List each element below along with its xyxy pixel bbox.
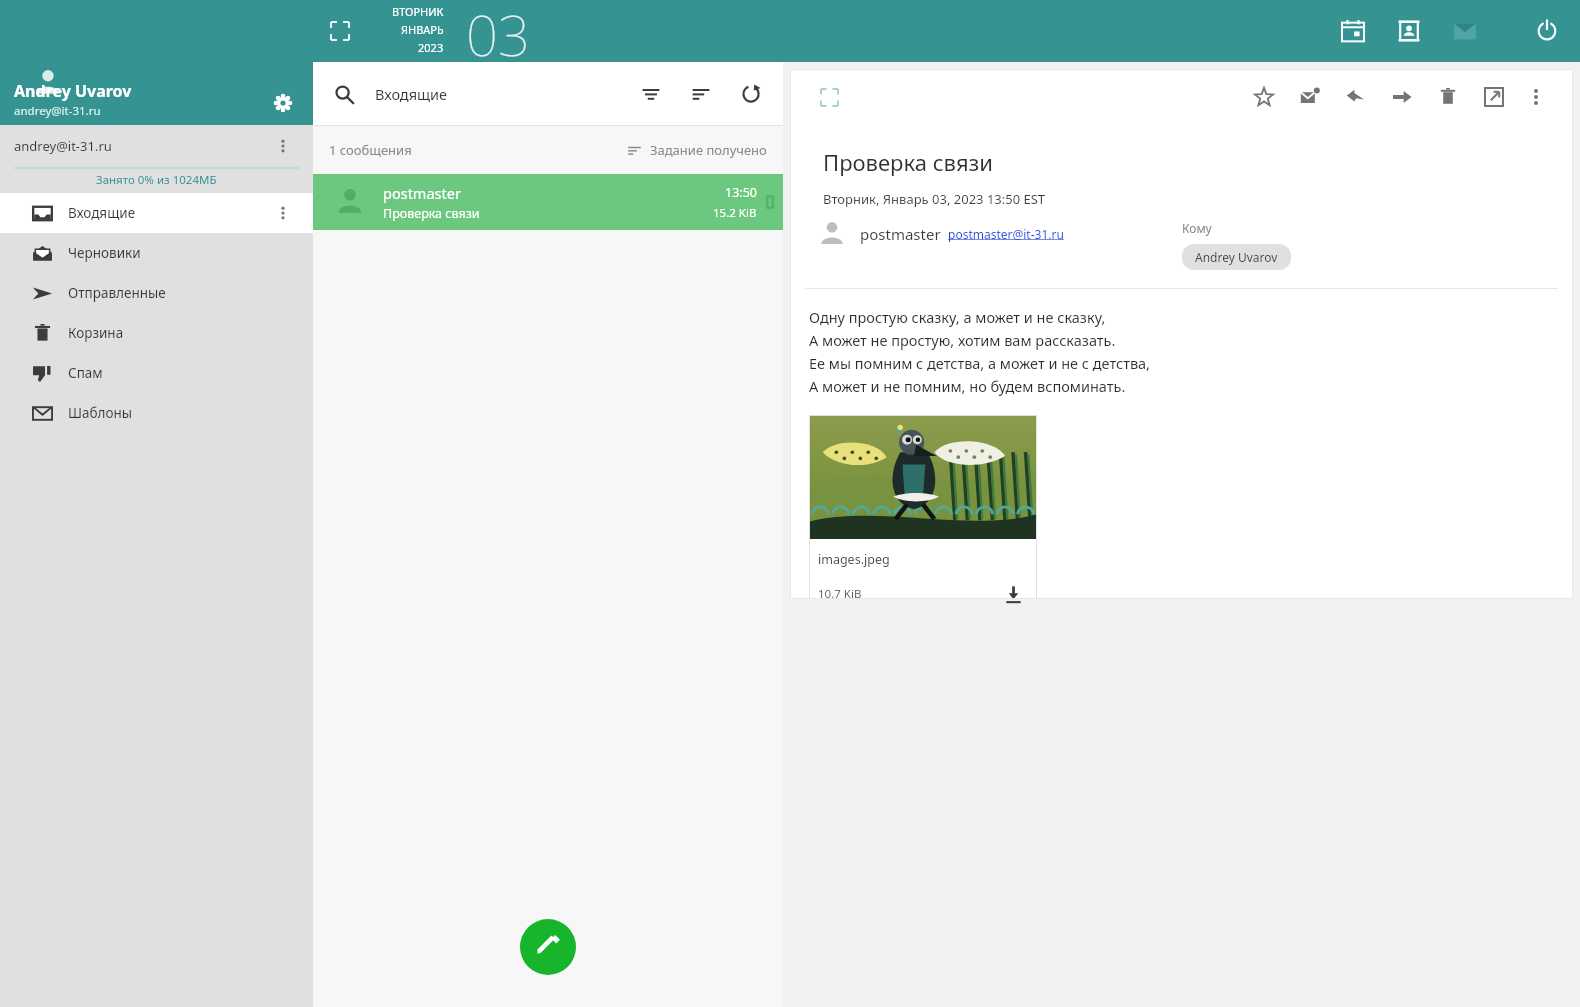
- staticText: postmaster: [383, 183, 461, 203]
- staticText: Проверка связи: [383, 205, 480, 222]
- staticText: Отправленные: [68, 284, 166, 302]
- button[interactable]: Expand: [816, 84, 842, 110]
- button[interactable]: Черновики: [0, 233, 313, 273]
- staticText: postmaster: [860, 224, 941, 244]
- staticText: Andrey Uvarov: [14, 80, 132, 102]
- staticText: Ее мы помним с детства, а может и не с д…: [809, 353, 1151, 373]
- staticText: ЯНВАРЬ: [401, 22, 444, 37]
- button[interactable]: Download: [1001, 586, 1025, 599]
- button[interactable]: Compose: [520, 919, 576, 975]
- button[interactable]: Шаблоны: [0, 393, 313, 433]
- button[interactable]: Forward: [1387, 82, 1417, 112]
- button[interactable]: Star: [1249, 82, 1279, 112]
- button[interactable]: andrey@it-31.ru: [0, 125, 313, 167]
- staticText: Вторник, Январь 03, 2023 13:50 EST: [823, 190, 1046, 208]
- staticText: 1 сообщения: [329, 141, 412, 159]
- staticText: 15.2 KiB: [713, 205, 757, 221]
- button[interactable]: More: [1521, 82, 1551, 112]
- button[interactable]: Mark unread: [1295, 82, 1325, 112]
- button[interactable]: Open in new: [1479, 82, 1509, 112]
- button[interactable]: images.jpeg: [809, 415, 1037, 599]
- button[interactable]: Andrey Uvarov: [1182, 244, 1291, 270]
- staticText: ВТОРНИК: [392, 4, 444, 19]
- staticText: Корзина: [68, 324, 124, 342]
- staticText: Занято 0% из 1024МБ: [96, 172, 217, 188]
- button[interactable]: Refresh: [735, 78, 767, 110]
- staticText: Andrey Uvarov: [1195, 249, 1278, 265]
- button[interactable]: Settings: [269, 89, 297, 117]
- button[interactable]: Входящие: [0, 193, 313, 233]
- button[interactable]: postmaster@it-31.ru: [948, 226, 1064, 242]
- button[interactable]: Sort: [685, 78, 717, 110]
- staticText: Проверка связи: [823, 147, 994, 177]
- staticText: А может и не помним, но будем вспоминать…: [809, 376, 1126, 396]
- button[interactable]: Calendar: [1336, 14, 1370, 48]
- staticText: 13:50: [725, 184, 757, 201]
- button[interactable]: Спам: [0, 353, 313, 393]
- button[interactable]: Mail: [1448, 14, 1482, 48]
- button[interactable]: Search: [327, 77, 361, 111]
- staticText: andrey@it-31.ru: [14, 137, 112, 155]
- button[interactable]: postmaster: [313, 174, 783, 230]
- staticText: Входящие: [375, 84, 448, 104]
- staticText: Черновики: [68, 244, 141, 262]
- button[interactable]: Корзина: [0, 313, 313, 353]
- button[interactable]: Reply: [1341, 82, 1371, 112]
- button[interactable]: Delete: [1433, 82, 1463, 112]
- staticText: Кому: [1182, 220, 1212, 236]
- button[interactable]: Отправленные: [0, 273, 313, 313]
- staticText: 2023: [418, 40, 444, 55]
- staticText: А может не простую, хотим вам рассказать…: [809, 330, 1116, 350]
- button[interactable]: Contacts: [1392, 14, 1426, 48]
- staticText: Спам: [68, 364, 103, 382]
- staticText: 10.7 KiB: [818, 586, 862, 599]
- button[interactable]: Power: [1530, 14, 1564, 48]
- staticText: andrey@it-31.ru: [14, 103, 101, 119]
- button[interactable]: Fullscreen: [325, 16, 355, 46]
- staticText: 03: [466, 0, 530, 58]
- staticText: Входящие: [68, 204, 136, 222]
- staticText: Одну простую сказку, а может и не сказку…: [809, 307, 1106, 327]
- staticText: Задание получено: [650, 141, 767, 159]
- staticText: images.jpeg: [818, 551, 890, 568]
- staticText: Шаблоны: [68, 404, 133, 422]
- button[interactable]: Filter: [635, 78, 667, 110]
